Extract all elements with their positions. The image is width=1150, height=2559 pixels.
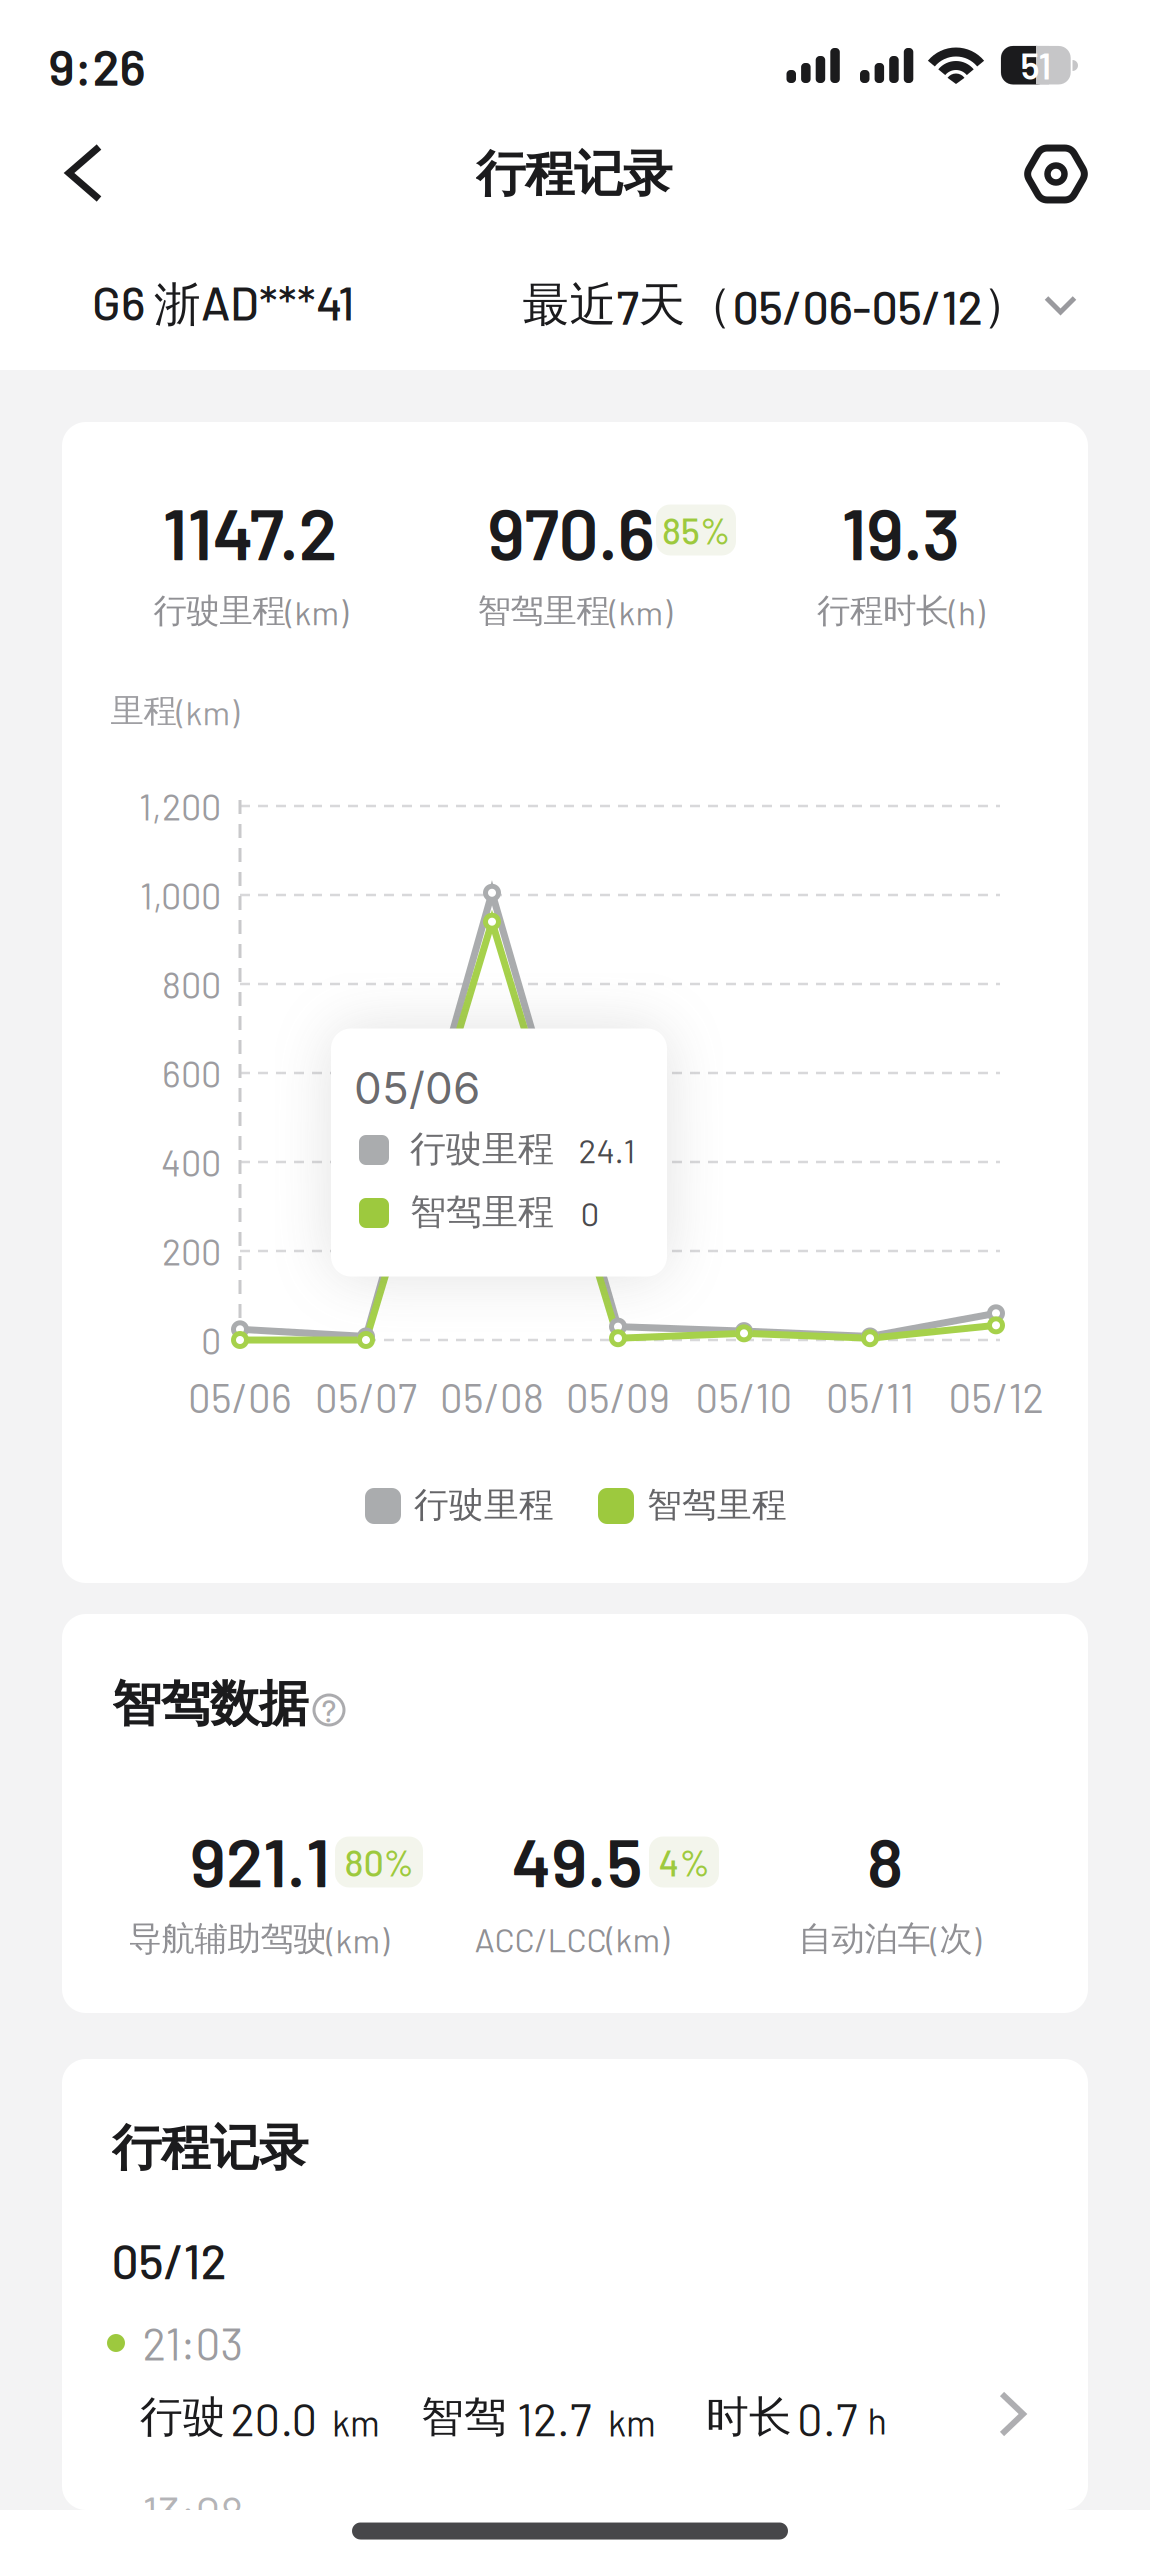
staticText: 8 [867,1819,903,1901]
staticText: 导航辅助驾驶(km) [128,1918,389,1960]
staticText: 85% [662,508,730,552]
staticText: 行程记录 [476,144,672,204]
staticText: 05/12 [948,1373,1043,1421]
staticText: 0 [201,1318,221,1362]
staticText: 05/08 [440,1373,544,1421]
button[interactable]: G6 浙AD***41 [92,274,354,334]
staticText: 05/12 [111,2231,226,2289]
staticText: 800 [162,962,221,1006]
staticText: 行驶里程 [414,1484,554,1526]
staticText: 05/11 [826,1373,914,1421]
staticText: 970.6 [487,490,654,574]
staticText: 0 [580,1193,599,1233]
staticText: 05/09 [566,1373,670,1421]
staticText: 智驾 [421,2391,507,2443]
staticText: 行程时长(h) [817,590,985,632]
staticText: 13:08 [142,2486,243,2538]
staticText: 最近7天（05/06-05/12） [522,276,1029,334]
staticText: 9:26 [48,36,145,96]
staticText: km [332,2400,380,2444]
staticText: 19.3 [841,490,960,574]
staticText: 0.7 [797,2391,857,2445]
staticText: 80% [344,1840,413,1884]
staticText: 行驶里程 [410,1127,554,1171]
staticText: 时长 [706,2391,792,2443]
staticText: 400 [161,1140,221,1184]
staticText: 智驾数据 [112,1674,308,1734]
staticText: 行驶里程(km) [153,590,348,632]
staticText: 行驶 [140,2391,226,2443]
button[interactable]: Back [43,139,127,207]
staticText: G6 浙AD***41 [92,274,354,334]
button[interactable]: Help [309,1690,349,1730]
button[interactable]: 行驶 [62,2380,1088,2450]
staticText: 05/06 [354,1061,480,1115]
staticText: 自动泊车(次) [798,1918,981,1960]
staticText: 51 [1020,43,1051,87]
button[interactable]: Settings [1011,129,1101,219]
staticText: 1,200 [139,784,221,828]
staticText: 智驾里程 [410,1190,554,1234]
staticText: 21:03 [142,2317,243,2369]
staticText: ? [321,1692,336,1728]
staticText: h [867,2398,886,2442]
staticText: 05/10 [695,1373,792,1421]
staticText: 行程记录 [112,2118,308,2178]
staticText: 1147.2 [162,490,337,574]
staticText: 05/07 [315,1373,417,1421]
staticText: 24.1 [578,1130,635,1170]
staticText: km [608,2400,656,2444]
staticText: 49.5 [511,1819,642,1901]
staticText: 20.0 [230,2391,317,2445]
staticText: 智驾里程 [647,1484,787,1526]
staticText: ACC/LCC(km) [474,1919,669,1959]
button[interactable]: 最近7天（05/06-05/12） [522,276,1077,334]
staticText: 智驾里程(km) [477,590,672,632]
staticText: 200 [162,1229,221,1273]
staticText: 4% [658,1840,709,1884]
staticText: 05/06 [188,1373,292,1421]
staticText: 12.7 [517,2391,591,2445]
staticText: 600 [162,1051,221,1095]
staticText: 1,000 [140,873,221,917]
staticText: 921.1 [190,1819,330,1901]
staticText: 里程(km) [110,690,239,732]
